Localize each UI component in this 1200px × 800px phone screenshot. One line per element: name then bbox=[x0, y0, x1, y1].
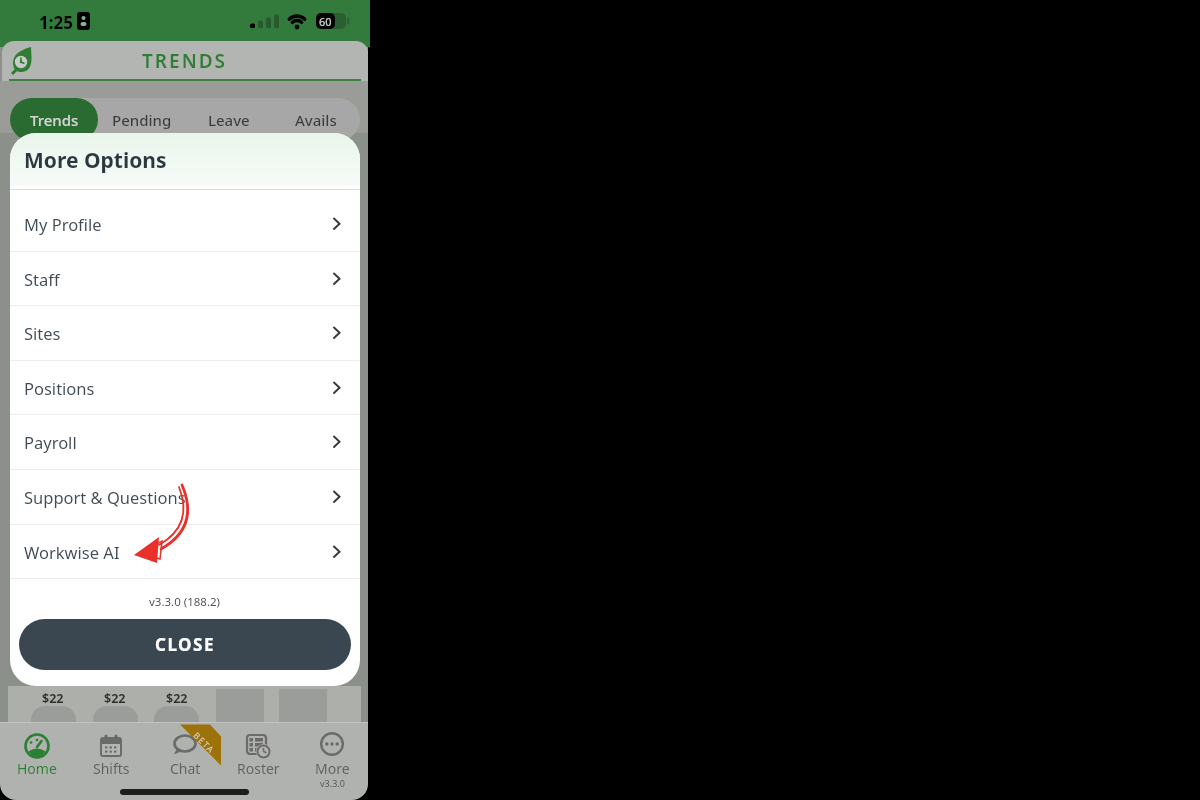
staticText: $22 bbox=[104, 690, 126, 707]
staticText: TRENDS bbox=[142, 48, 228, 74]
button[interactable]: Support & Questions bbox=[10, 469, 360, 524]
button[interactable]: CLOSE bbox=[19, 619, 351, 670]
staticText: Workwise AI bbox=[24, 541, 120, 563]
button[interactable]: My Profile bbox=[10, 196, 360, 251]
staticText: 60 bbox=[319, 14, 332, 29]
staticText: BETA bbox=[191, 730, 217, 756]
staticText: Avails bbox=[295, 110, 337, 130]
staticText: CLOSE bbox=[155, 633, 215, 656]
button[interactable]: Sites bbox=[10, 305, 360, 360]
staticText: Leave bbox=[208, 110, 250, 130]
staticText: Payroll bbox=[24, 431, 77, 453]
staticText: Pending bbox=[112, 110, 172, 130]
button[interactable]: Staff bbox=[10, 251, 360, 306]
button[interactable]: Leave bbox=[185, 98, 272, 141]
button[interactable]: Workwise AI bbox=[10, 524, 360, 579]
staticText: Sites bbox=[24, 322, 61, 344]
staticText: Shifts bbox=[93, 759, 130, 778]
button[interactable]: Positions bbox=[10, 360, 360, 415]
staticText: More bbox=[315, 759, 350, 778]
button[interactable] bbox=[233, 728, 283, 784]
staticText: $22 bbox=[42, 690, 64, 707]
staticText: Chat bbox=[170, 759, 201, 778]
staticText: Positions bbox=[24, 377, 95, 399]
staticText: More Options bbox=[24, 146, 167, 175]
staticText: Home bbox=[17, 759, 57, 778]
button[interactable]: Pending bbox=[98, 98, 185, 141]
staticText: Trends bbox=[30, 110, 79, 130]
staticText: 1:25 bbox=[39, 11, 73, 34]
staticText: $22 bbox=[166, 690, 188, 707]
button[interactable] bbox=[86, 728, 136, 784]
staticText: Roster bbox=[237, 759, 280, 778]
button[interactable] bbox=[160, 728, 210, 784]
button[interactable]: Avails bbox=[272, 98, 360, 141]
staticText: Support & Questions bbox=[24, 486, 186, 508]
staticText: My Profile bbox=[24, 213, 102, 235]
staticText: v3.3.0 bbox=[320, 777, 345, 789]
button[interactable] bbox=[307, 728, 357, 784]
button[interactable] bbox=[10, 98, 98, 141]
button[interactable]: Payroll bbox=[10, 414, 360, 469]
button[interactable] bbox=[12, 728, 62, 784]
staticText: v3.3.0 (188.2) bbox=[149, 594, 221, 610]
staticText: Staff bbox=[24, 268, 60, 290]
